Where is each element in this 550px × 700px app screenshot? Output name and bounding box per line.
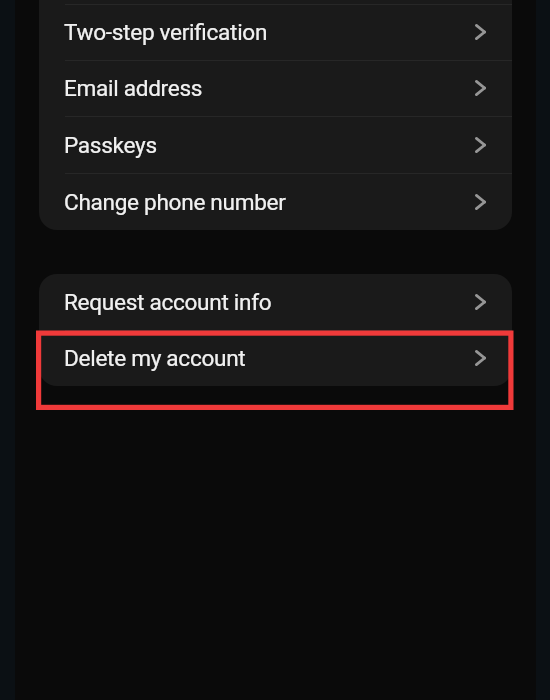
staticText: Email address xyxy=(64,75,448,101)
button[interactable]: Email address xyxy=(39,60,512,116)
button[interactable]: Request account info xyxy=(39,274,512,330)
staticText: Delete my account xyxy=(64,345,448,371)
button[interactable]: Two-step verification xyxy=(39,4,512,60)
staticText: Request account info xyxy=(64,289,448,315)
staticText: Two-step verification xyxy=(64,19,448,45)
button[interactable]: Passkeys xyxy=(39,116,512,173)
staticText: Change phone number xyxy=(64,189,448,215)
button[interactable]: Change phone number xyxy=(39,173,512,230)
staticText: Passkeys xyxy=(64,132,448,158)
button[interactable]: Delete my account xyxy=(39,330,512,386)
